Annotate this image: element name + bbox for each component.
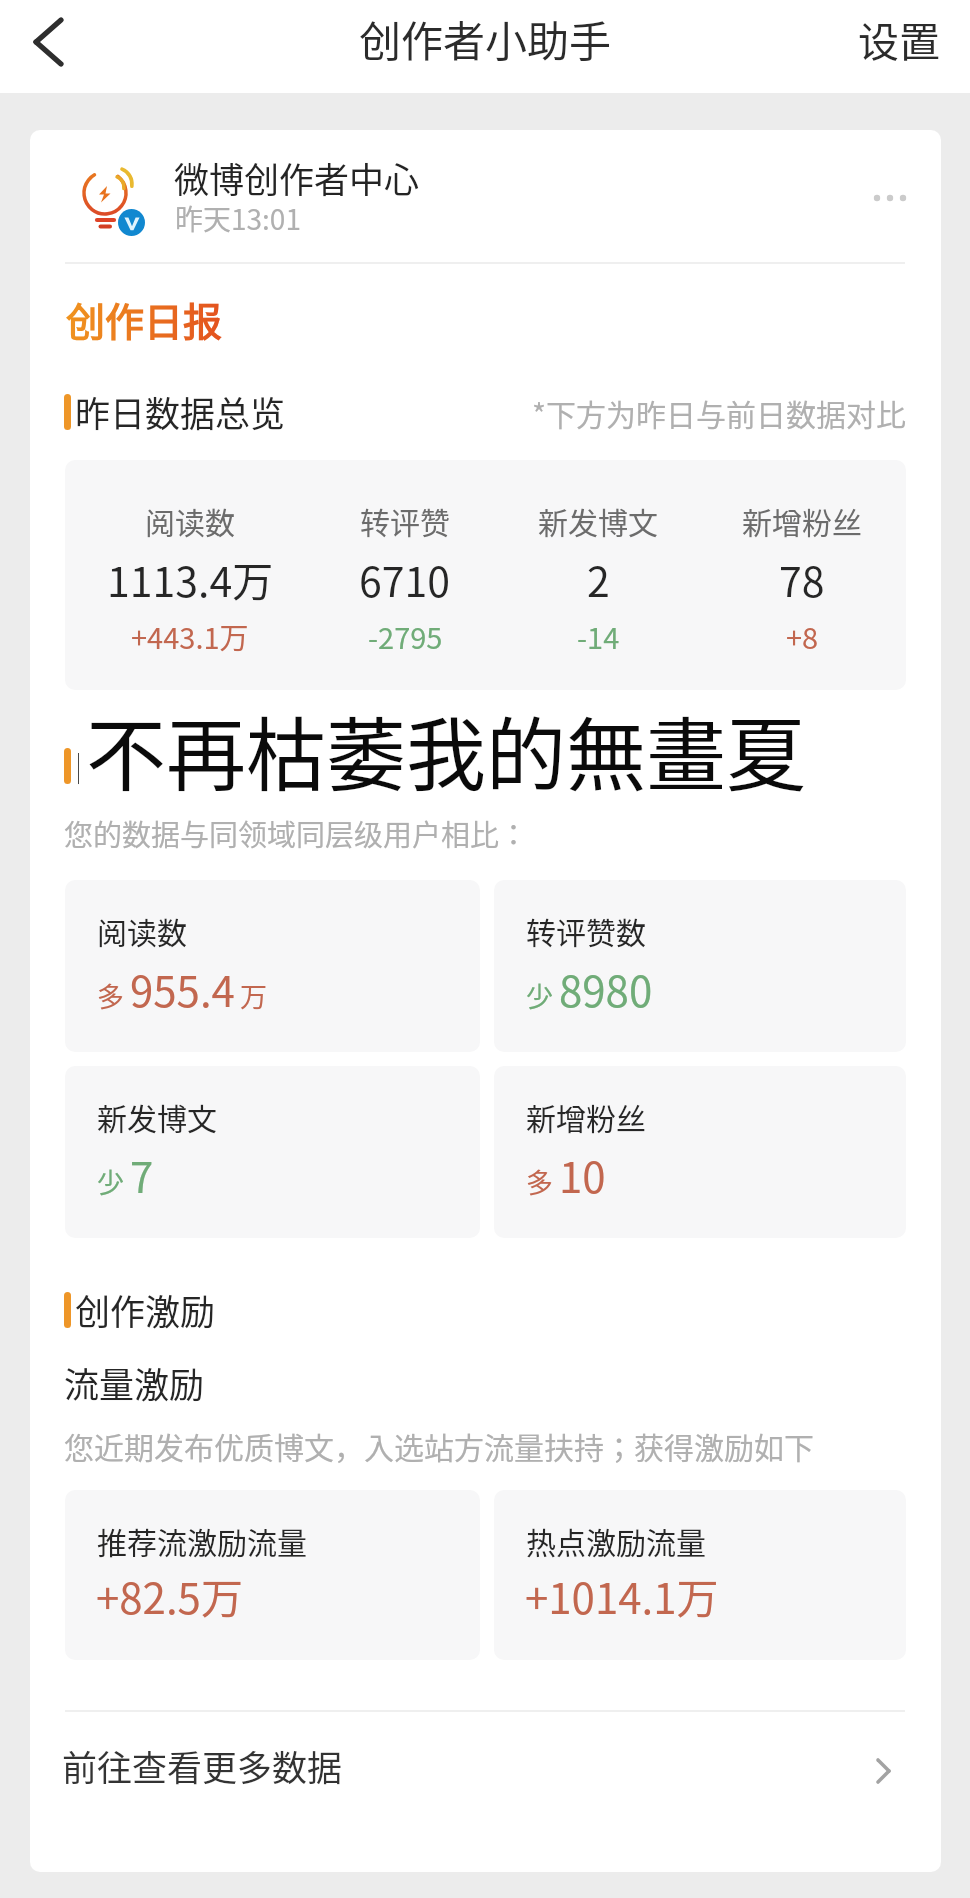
staticText: 万 (240, 976, 267, 1015)
staticText: 新增粉丝 (526, 1095, 646, 1138)
staticText: +1014.1万 (525, 1565, 719, 1626)
staticText: 您的数据与同领域同层级用户相比： (64, 812, 529, 854)
button[interactable]: 推荐流激励流量 (65, 1490, 480, 1660)
staticText: +8 (786, 615, 819, 657)
staticText: 流量激励 (64, 1357, 205, 1408)
staticText: 新发博文 (538, 499, 658, 542)
staticText: 78 (779, 549, 825, 608)
staticText: +443.1万 (131, 615, 249, 657)
button[interactable]: 设置 (818, 0, 970, 93)
staticText: 1113.4万 (107, 549, 274, 608)
staticText: -2795 (368, 615, 443, 657)
staticText: 创作者小助手 (359, 8, 612, 69)
button[interactable]: 转评赞数 (494, 880, 906, 1052)
staticText: 不再枯萎我的無畫夏 (86, 691, 806, 807)
staticText: 10 (559, 1144, 606, 1205)
staticText: 新增粉丝 (742, 499, 862, 542)
staticText: -14 (577, 615, 620, 657)
staticText: 阅读数 (97, 909, 187, 952)
staticText: 推荐流激励流量 (97, 1519, 307, 1562)
staticText: 您近期发布优质博文，入选站方流量扶持；获得激励如下 (64, 1424, 814, 1467)
staticText: 2 (587, 549, 610, 608)
staticText: 少 (97, 1162, 124, 1201)
staticText: 8980 (559, 958, 653, 1019)
staticText: 少 (526, 976, 553, 1015)
staticText: 新发博文 (97, 1095, 217, 1138)
staticText: +82.5万 (96, 1565, 243, 1626)
staticText: 创作日报 (66, 291, 223, 347)
staticText: 955.4 (130, 958, 235, 1019)
button[interactable]: 新增粉丝 (494, 1066, 906, 1238)
button[interactable]: 热点激励流量 (494, 1490, 906, 1660)
button[interactable]: More options (855, 174, 925, 222)
staticText: 转评赞数 (526, 909, 646, 952)
staticText: 多 (526, 1162, 553, 1201)
staticText: 多 (97, 976, 124, 1015)
button[interactable]: 阅读数 (65, 880, 480, 1052)
staticText: 热点激励流量 (526, 1519, 706, 1562)
staticText: 昨日数据总览 (75, 386, 286, 437)
staticText: 设置 (858, 9, 940, 68)
staticText: 转评赞 (360, 499, 450, 542)
staticText: 创作激励 (75, 1284, 216, 1335)
button[interactable]: Back (0, 0, 96, 93)
staticText: 微博创作者中心 (174, 152, 420, 203)
staticText: *下方为昨日与前日数据对比 (532, 391, 907, 434)
staticText: 6710 (359, 549, 451, 608)
staticText: 昨天13:01 (175, 198, 301, 239)
staticText: 前往查看更多数据 (62, 1740, 343, 1791)
staticText: 阅读数 (145, 499, 235, 542)
button[interactable]: 前往查看更多数据 (30, 1712, 941, 1830)
button[interactable]: 新发博文 (65, 1066, 480, 1238)
staticText: 7 (130, 1144, 154, 1205)
staticText: 同类对比 (75, 740, 216, 791)
